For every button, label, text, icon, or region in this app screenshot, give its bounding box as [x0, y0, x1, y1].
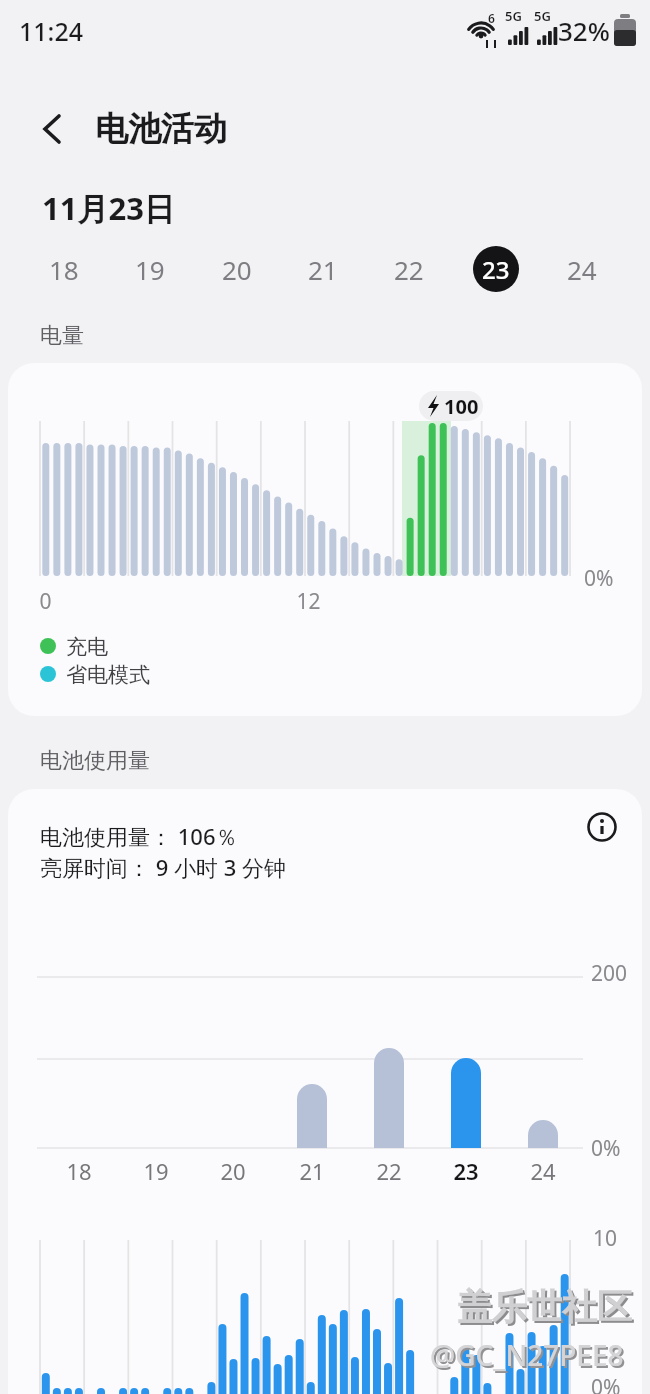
staticText: 0% [584, 564, 614, 593]
staticText: 电池活动 [95, 108, 227, 150]
staticText: 5G [505, 7, 522, 25]
button[interactable]: 21 [290, 241, 356, 297]
staticText: 电池使用量： 106％ [40, 821, 238, 851]
staticText: 10 [593, 1224, 618, 1253]
staticText: 11月23日 [42, 187, 175, 229]
staticText: 0 [39, 587, 52, 616]
staticText: 5G [534, 7, 551, 25]
button[interactable]: 18 [31, 241, 97, 297]
staticText: 23 [482, 253, 510, 286]
staticText: 20 [222, 252, 252, 287]
staticText: 22 [376, 1156, 402, 1186]
staticText: 100 [444, 393, 479, 420]
staticText: 亮屏时间： 9 小时 3 分钟 [40, 852, 287, 882]
staticText: 盖乐世社区 [457, 1285, 632, 1329]
staticText: 21 [299, 1156, 325, 1186]
staticText: 24 [567, 252, 597, 287]
staticText: 12 [296, 587, 321, 616]
staticText: 18 [49, 252, 79, 287]
staticText: 24 [530, 1156, 556, 1186]
staticText: 19 [135, 252, 165, 287]
button[interactable] [32, 105, 78, 153]
staticText: 19 [143, 1156, 169, 1186]
staticText: 电池使用量 [40, 747, 150, 775]
staticText: @GC_N27PEE8 [430, 1336, 624, 1374]
staticText: 21 [308, 252, 338, 287]
staticText: 充电 [66, 634, 108, 660]
staticText: 省电模式 [66, 662, 150, 688]
staticText: 23 [453, 1156, 479, 1186]
staticText: 32% [558, 13, 610, 48]
staticText: 电量 [40, 322, 84, 350]
staticText: 0% [591, 1134, 621, 1163]
button[interactable]: 23 [473, 246, 519, 292]
staticText: @GC_N27PEE8 [432, 1338, 626, 1376]
staticText: 0% [591, 1373, 621, 1394]
staticText: 18 [66, 1156, 92, 1186]
button[interactable]: 24 [549, 241, 615, 297]
button[interactable]: 19 [117, 241, 183, 297]
staticText: 盖乐世社区 [459, 1287, 634, 1331]
staticText: 11:24 [19, 14, 84, 48]
staticText: 22 [394, 252, 424, 287]
staticText: 200 [591, 959, 628, 988]
staticText: 6 [488, 10, 495, 26]
staticText: 20 [220, 1156, 246, 1186]
button[interactable]: 22 [376, 241, 442, 297]
button[interactable]: 20 [204, 241, 270, 297]
button[interactable] [580, 805, 624, 849]
